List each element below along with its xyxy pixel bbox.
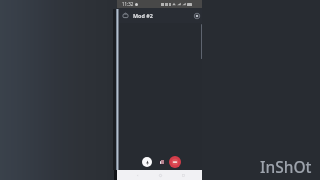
button[interactable]: Recents	[180, 170, 187, 180]
button[interactable]: Account	[192, 11, 201, 20]
staticText: Mod #2	[133, 12, 153, 19]
staticText: 11:32	[122, 1, 134, 7]
button[interactable]: Home	[157, 170, 164, 180]
staticText: InShOt	[260, 156, 312, 177]
button[interactable]: End call	[169, 156, 181, 168]
button[interactable]: Mute microphone	[142, 157, 152, 167]
button[interactable]: Self view	[159, 160, 165, 165]
button[interactable]: Chat	[121, 11, 130, 20]
